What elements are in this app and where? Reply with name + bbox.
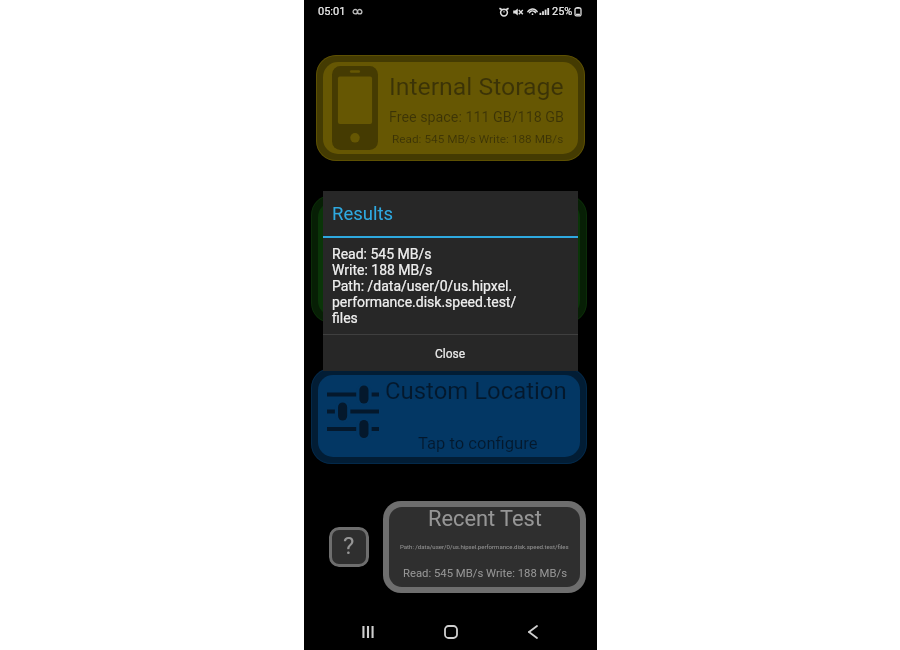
button[interactable]: Close [323,337,578,371]
staticText: Results [332,203,394,225]
staticText: Free space: 111 GB/118 GB [389,109,564,126]
button[interactable]: Home [433,614,469,650]
staticText: Read: 545 MB/s Write: 188 MB/s Path: /da… [332,246,517,326]
staticText: Tap to configure [418,434,538,453]
button[interactable]: Custom Location [318,375,580,457]
button[interactable]: Recent apps [350,614,386,650]
staticText: 25% [552,5,573,18]
staticText: Path: /data/user/0/us.hipxel.performance… [400,543,569,550]
staticText: Recent Test [428,507,542,532]
staticText: 05:01 [318,5,346,18]
button[interactable]: Back [515,614,551,650]
staticText: Close [435,347,466,361]
staticText: Read: 545 MB/s Write: 188 MB/s [403,567,567,580]
button[interactable] [318,202,580,316]
button[interactable]: Help [329,527,369,567]
staticText: Internal Storage [389,72,564,101]
staticText: ? [343,532,355,560]
button[interactable]: Internal Storage [323,62,578,154]
staticText: Read: 545 MB/s Write: 188 MB/s [392,132,564,146]
button[interactable]: Recent Test [389,507,580,587]
staticText: Custom Location [385,377,567,405]
